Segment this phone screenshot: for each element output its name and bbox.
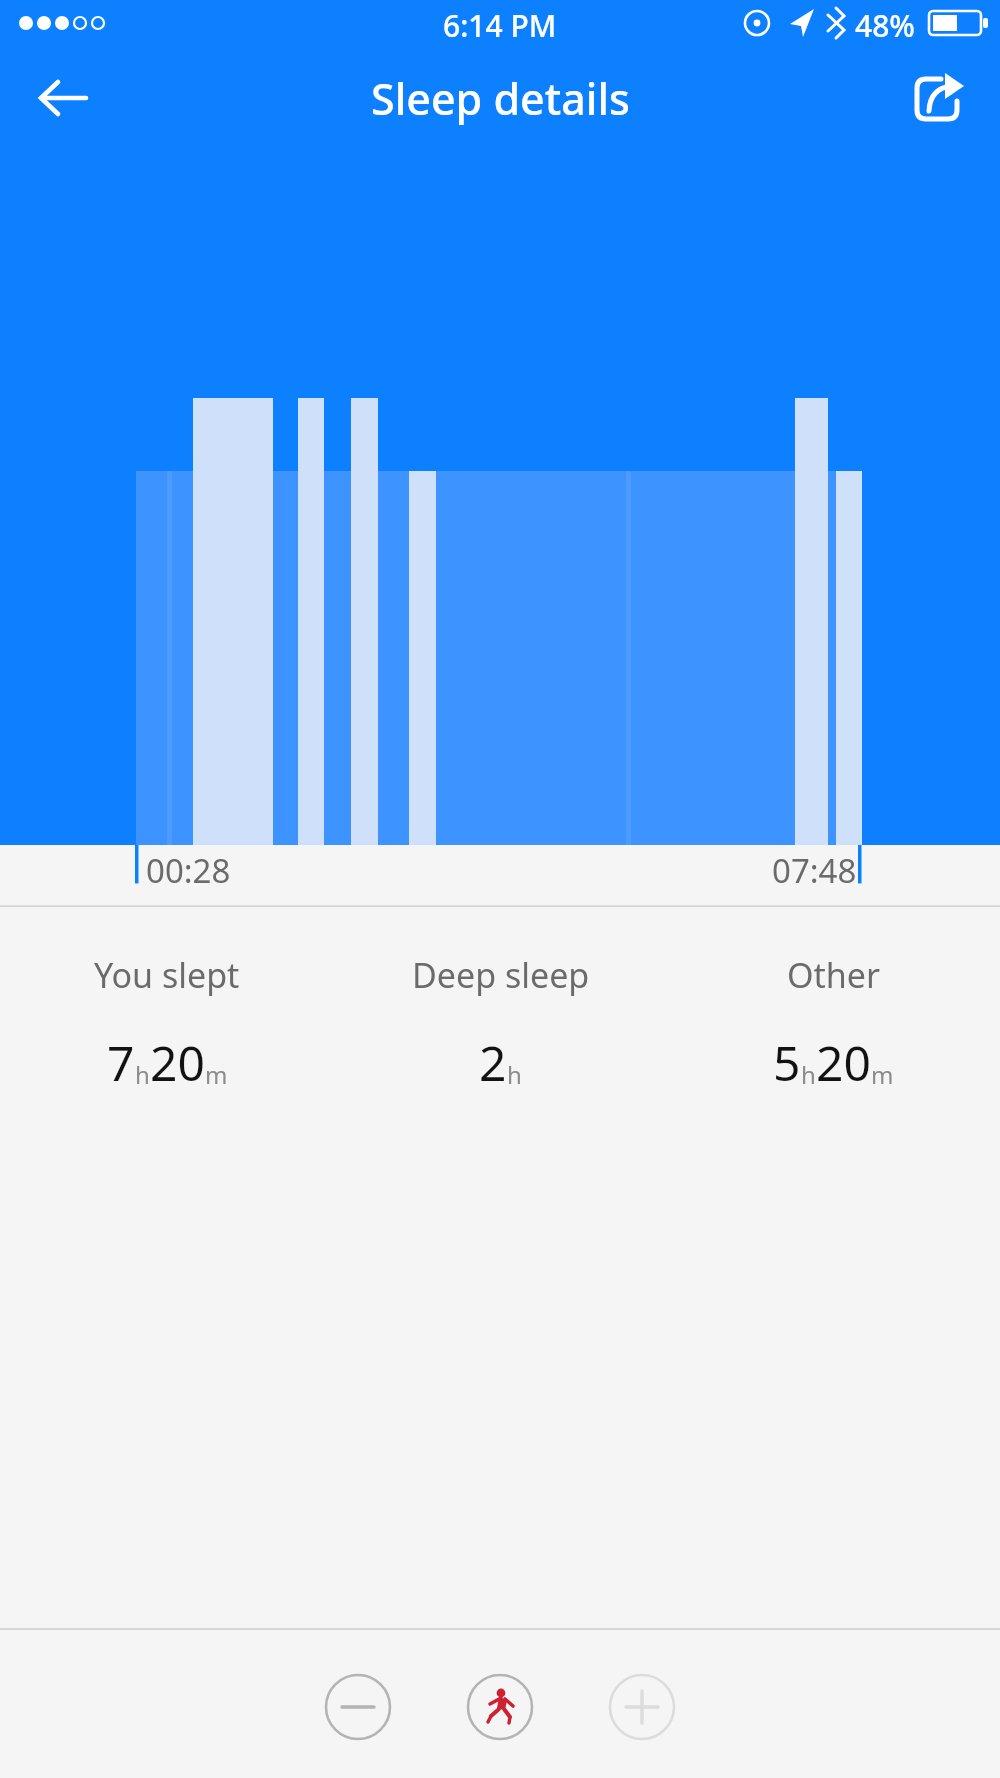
button[interactable]: Back [20,52,112,144]
staticText: h [507,1058,522,1091]
staticText: 20 [150,1030,205,1095]
button[interactable]: Increase [608,1673,676,1741]
staticText: 07:48 [772,848,857,893]
button[interactable]: Start activity [466,1673,534,1741]
staticText: Sleep details [371,69,630,128]
button[interactable]: Decrease [324,1673,392,1741]
staticText: 20 [816,1030,871,1095]
staticText: 00:28 [146,848,231,893]
staticText: m [871,1058,894,1091]
staticText: h [135,1058,150,1091]
staticText: h [801,1058,816,1091]
staticText: m [205,1058,228,1091]
staticText: 6:14 PM [443,5,557,46]
button[interactable]: Share [896,57,978,139]
staticText: 2 [479,1030,507,1095]
staticText: You slept [94,952,240,998]
staticText: 7 [107,1030,135,1095]
staticText: 5 [773,1030,801,1095]
staticText: Deep sleep [412,952,590,998]
staticText: 48% [855,5,915,46]
staticText: Other [787,952,881,998]
